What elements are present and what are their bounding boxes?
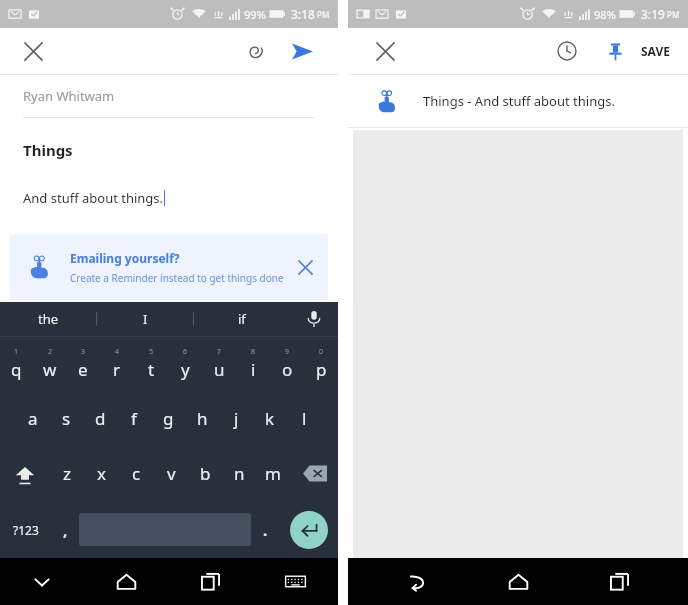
button[interactable]: I [97,302,193,336]
staticText: t [148,358,155,381]
staticText: if [238,310,246,328]
button[interactable]: the [0,302,96,336]
button[interactable]: Voice input [290,302,338,336]
button[interactable]: SAVE [641,33,670,69]
button[interactable]: b [188,446,222,501]
staticText: l [302,407,307,430]
staticText: 0 [319,347,324,357]
staticText: 4 [115,347,120,357]
button[interactable]: ?123 [0,501,51,558]
staticText: e [78,358,88,381]
button[interactable]: Enter [290,511,328,549]
staticText: 98% [594,7,616,22]
button[interactable]: s [49,391,83,446]
staticText: PM [317,9,330,20]
button[interactable]: Emailing yourself? [10,234,328,300]
staticText: 2 [48,347,53,357]
button[interactable]: , [51,501,79,558]
button[interactable]: d [83,391,117,446]
button[interactable]: Recents [168,558,253,605]
staticText: PM [667,9,680,20]
button[interactable]: Hide keyboard [0,558,84,605]
staticText: 3:19 [641,6,665,22]
staticText: d [95,407,106,430]
staticText: 9 [285,347,290,357]
button[interactable]: if [194,302,290,336]
staticText: 6 [183,347,188,357]
staticText: 3 [81,347,86,357]
staticText: g [163,407,174,430]
button[interactable]: . [251,501,279,558]
button[interactable]: Backspace [290,446,338,501]
staticText: q [11,358,22,381]
staticText: 99% [244,7,266,22]
button[interactable]: g [151,391,185,446]
button[interactable]: f [117,391,151,446]
button[interactable]: l [287,391,321,446]
button[interactable]: 8 [236,337,270,391]
staticText: 1 [14,347,19,357]
button[interactable]: Ryan Whitwam [0,75,338,117]
staticText: y [181,358,190,381]
button[interactable]: Close [368,34,402,68]
button[interactable]: v [154,446,188,501]
button[interactable]: Set time [549,33,585,69]
button[interactable]: Attach [238,33,274,69]
button[interactable]: 6 [168,337,202,391]
staticText: . [263,520,268,540]
staticText: m [265,462,281,485]
staticText: ?123 [13,522,39,538]
button[interactable]: 3 [66,337,100,391]
button[interactable]: Home [468,558,569,605]
staticText: v [167,462,176,485]
staticText: 5 [149,347,154,357]
button[interactable]: h [185,391,219,446]
button[interactable]: Close [16,34,50,68]
staticText: 7 [217,347,222,357]
button[interactable]: 2 [33,337,66,391]
button[interactable]: m [256,446,290,501]
button[interactable]: Recents [569,558,670,605]
button[interactable]: Dismiss [288,250,322,284]
button[interactable]: Things - And stuff about things. [348,75,688,127]
button[interactable]: 0 [304,337,338,391]
staticText: f [131,407,137,430]
staticText: SAVE [641,43,670,59]
staticText: 3:18 [291,6,315,22]
staticText: u [214,358,225,381]
button[interactable]: j [219,391,253,446]
button[interactable]: a [16,391,49,446]
button[interactable]: Pin [597,33,633,69]
staticText: a [28,407,38,430]
staticText: j [234,407,239,430]
button[interactable]: 7 [202,337,236,391]
button[interactable]: z [49,446,84,501]
button[interactable]: 4 [100,337,134,391]
staticText: i [251,358,256,381]
staticText: z [63,462,71,485]
button[interactable]: Send [284,33,320,69]
button[interactable]: x [84,446,119,501]
button[interactable]: Home [84,558,168,605]
button[interactable]: 5 [134,337,168,391]
staticText: c [132,462,141,485]
staticText: Ryan Whitwam [23,87,115,105]
staticText: Create a Reminder instead to get things … [70,271,284,285]
button[interactable]: Switch keyboard [253,558,338,605]
button[interactable]: 9 [270,337,304,391]
staticText: the [38,310,59,328]
staticText: And stuff about things. [23,189,164,207]
button[interactable]: n [222,446,256,501]
staticText: o [282,358,293,381]
staticText: p [316,358,327,381]
button[interactable]: Back [366,558,468,605]
button[interactable]: Shift [0,446,49,501]
staticText: , [63,520,68,540]
button[interactable]: 1 [0,337,33,391]
button[interactable]: k [253,391,287,446]
button[interactable]: c [119,446,154,501]
staticText: I [143,310,148,328]
staticText: n [234,462,245,485]
staticText: k [265,407,275,430]
